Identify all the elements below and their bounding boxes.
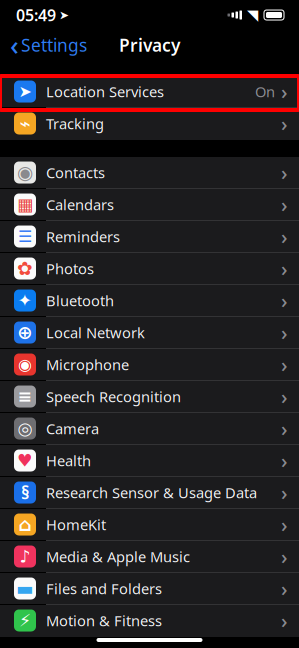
staticText: Health xyxy=(46,451,91,470)
button[interactable]: ⌂ xyxy=(0,509,299,541)
staticText: Contacts xyxy=(46,163,105,182)
staticText: Research Sensor & Usage Data xyxy=(46,483,257,502)
button[interactable]: ◉ xyxy=(0,157,299,189)
staticText: HomeKit xyxy=(46,515,106,534)
staticText: ⌁ xyxy=(19,113,30,134)
staticText: ◎ xyxy=(17,419,32,438)
button[interactable]: ♪ xyxy=(0,541,299,573)
staticText: Motion & Fitness xyxy=(46,611,162,630)
staticText: ☰ xyxy=(18,227,32,246)
staticText: ▦ xyxy=(17,195,33,214)
button[interactable]: ▦ xyxy=(0,189,299,221)
button[interactable]: ◉ xyxy=(0,349,299,381)
staticText: On xyxy=(255,82,275,101)
button[interactable]: ▬ xyxy=(0,573,299,605)
staticText: › xyxy=(281,159,288,186)
staticText: ✦ xyxy=(17,291,32,310)
staticText: › xyxy=(281,287,288,314)
staticText: › xyxy=(281,543,288,570)
staticText: › xyxy=(281,351,288,378)
staticText: ◥ xyxy=(247,7,258,23)
staticText: › xyxy=(281,110,288,137)
staticText: Camera xyxy=(46,419,99,438)
button[interactable]: ➤ xyxy=(0,76,299,108)
staticText: Privacy xyxy=(119,33,180,56)
staticText: ➤ xyxy=(18,82,31,101)
staticText: Local Network xyxy=(46,323,145,342)
staticText: › xyxy=(281,415,288,442)
staticText: ⊕ xyxy=(17,322,33,343)
button[interactable]: ✿ xyxy=(0,253,299,285)
staticText: ≡ xyxy=(17,387,32,406)
staticText: › xyxy=(281,191,288,218)
staticText: Location Services xyxy=(46,82,164,101)
staticText: Photos xyxy=(46,259,94,278)
staticText: › xyxy=(281,575,288,602)
button[interactable]: § xyxy=(0,477,299,509)
button[interactable]: ☰ xyxy=(0,221,299,253)
staticText: ✿ xyxy=(17,258,33,279)
staticText: Speech Recognition xyxy=(46,387,181,406)
staticText: 05:49 xyxy=(16,4,56,26)
staticText: § xyxy=(21,481,29,504)
staticText: Reminders xyxy=(46,227,120,246)
staticText: ⌂ xyxy=(18,514,31,535)
staticText: Tracking xyxy=(46,114,104,133)
staticText: ◉ xyxy=(18,355,32,374)
staticText: › xyxy=(281,255,288,282)
button[interactable]: ≡ xyxy=(0,381,299,413)
staticText: ♪ xyxy=(19,547,30,566)
staticText: Bluetooth xyxy=(46,291,114,310)
button[interactable]: ‹ xyxy=(0,23,87,67)
button[interactable]: ✦ xyxy=(0,285,299,317)
staticText: › xyxy=(281,223,288,250)
staticText: › xyxy=(281,383,288,410)
button[interactable]: ♥ xyxy=(0,445,299,477)
staticText: › xyxy=(281,78,288,105)
staticText: › xyxy=(281,511,288,538)
staticText: ♥ xyxy=(17,451,33,470)
button[interactable]: ◎ xyxy=(0,413,299,445)
staticText: › xyxy=(281,319,288,346)
button[interactable]: ⚡︎ xyxy=(0,605,299,637)
button[interactable]: ⌁ xyxy=(0,108,299,140)
staticText: Microphone xyxy=(46,355,129,374)
staticText: Calendars xyxy=(46,195,114,214)
staticText: Files and Folders xyxy=(46,579,162,598)
staticText: ⚡︎ xyxy=(19,611,31,630)
staticText: › xyxy=(281,607,288,634)
staticText: Settings xyxy=(21,33,87,56)
staticText: ◉ xyxy=(17,162,33,183)
staticText: ➤ xyxy=(59,8,69,22)
button[interactable]: ⊕ xyxy=(0,317,299,349)
staticText: › xyxy=(281,447,288,474)
staticText: ▬ xyxy=(16,578,34,599)
staticText: › xyxy=(281,479,288,506)
staticText: Media & Apple Music xyxy=(46,547,190,566)
staticText: ‹ xyxy=(10,27,19,63)
